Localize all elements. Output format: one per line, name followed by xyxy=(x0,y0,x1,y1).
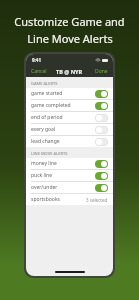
staticText: Line Move Alerts xyxy=(27,31,113,46)
staticText: game completed xyxy=(31,102,95,109)
staticText: sportsbooks xyxy=(31,196,86,203)
button[interactable]: game started xyxy=(26,88,113,99)
staticText: lead change xyxy=(31,138,95,145)
button[interactable]: end of period xyxy=(26,112,113,123)
staticText: Done xyxy=(95,68,108,75)
button[interactable]: puck line xyxy=(26,170,113,181)
button[interactable]: Toggle on xyxy=(95,184,108,192)
staticText: 9:41 xyxy=(32,57,41,63)
button[interactable]: Toggle on xyxy=(95,102,108,110)
staticText: LINE MOVE ALERTS xyxy=(31,151,68,156)
button[interactable]: sportsbooks xyxy=(26,194,113,205)
staticText: money line xyxy=(31,160,95,167)
staticText: over/under xyxy=(31,184,95,191)
staticText: end of period xyxy=(31,114,95,121)
staticText: puck line xyxy=(31,172,95,179)
button[interactable]: Toggle off xyxy=(95,138,108,146)
button[interactable]: lead change xyxy=(26,136,113,147)
staticText: Cancel xyxy=(31,68,47,75)
staticText: 3 selected xyxy=(86,197,108,203)
button[interactable]: every goal xyxy=(26,124,113,135)
button[interactable]: Toggle off xyxy=(95,114,108,122)
button[interactable]: Toggle on xyxy=(95,160,108,168)
button[interactable]: Done xyxy=(90,66,113,77)
staticText: game started xyxy=(31,90,95,97)
staticText: Customize Game and xyxy=(14,14,125,29)
button[interactable]: over/under xyxy=(26,182,113,193)
staticText: GAME ALERTS xyxy=(31,81,58,86)
button[interactable]: game completed xyxy=(26,100,113,111)
button[interactable]: Toggle on xyxy=(95,172,108,180)
button[interactable]: Cancel xyxy=(26,66,52,77)
button[interactable]: Toggle off xyxy=(95,126,108,134)
staticText: every goal xyxy=(31,126,95,133)
button[interactable]: money line xyxy=(26,158,113,169)
staticText: TB @ NYR xyxy=(56,68,83,75)
button[interactable]: Toggle on xyxy=(95,90,108,98)
